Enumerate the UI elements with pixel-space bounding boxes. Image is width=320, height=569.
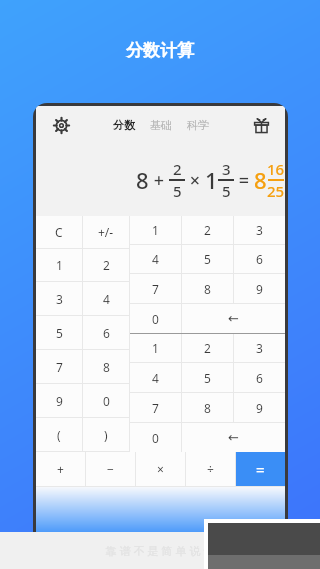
staticText: ) bbox=[104, 427, 108, 443]
button[interactable]: 3 bbox=[234, 334, 285, 362]
staticText: 基础 bbox=[150, 118, 172, 132]
staticText: 9 bbox=[256, 281, 263, 297]
staticText: 3 bbox=[56, 291, 63, 307]
button[interactable]: +/- bbox=[83, 216, 129, 248]
staticText: 2 bbox=[173, 159, 182, 179]
staticText: 7 bbox=[152, 281, 159, 297]
staticText: 2 bbox=[204, 222, 211, 238]
staticText: 分数 bbox=[113, 118, 135, 132]
button[interactable]: Backspace bbox=[182, 423, 285, 452]
button[interactable]: Settings bbox=[48, 112, 74, 138]
button[interactable]: Backspace bbox=[182, 304, 285, 333]
button[interactable]: 5 bbox=[182, 363, 233, 392]
staticText: 6 bbox=[103, 325, 110, 341]
button[interactable]: 1 bbox=[36, 249, 82, 281]
button[interactable]: × bbox=[136, 452, 185, 486]
staticText: +/- bbox=[98, 224, 114, 240]
staticText: 8 bbox=[136, 165, 149, 195]
button[interactable]: 4 bbox=[83, 282, 129, 315]
staticText: 7 bbox=[152, 400, 159, 416]
staticText: 分数计算 bbox=[126, 40, 194, 61]
button[interactable]: 科学 bbox=[185, 114, 211, 136]
button[interactable]: 6 bbox=[234, 245, 285, 273]
staticText: = bbox=[256, 459, 265, 479]
button[interactable]: 4 bbox=[130, 363, 181, 392]
staticText: 靠谱不是简单说说 bbox=[104, 544, 216, 558]
button[interactable]: + bbox=[36, 452, 85, 486]
staticText: ÷ bbox=[207, 461, 214, 477]
button[interactable]: Gift bbox=[248, 112, 274, 138]
button[interactable]: 0 bbox=[130, 304, 181, 333]
button[interactable]: 1 bbox=[130, 216, 181, 244]
button[interactable]: 4 bbox=[130, 245, 181, 273]
button[interactable]: 2 bbox=[83, 249, 129, 281]
button[interactable]: 9 bbox=[234, 274, 285, 303]
button[interactable]: 7 bbox=[130, 393, 181, 422]
button[interactable]: 5 bbox=[36, 316, 82, 349]
button[interactable]: ( bbox=[36, 418, 82, 451]
button[interactable]: 9 bbox=[234, 393, 285, 422]
button[interactable]: ÷ bbox=[186, 452, 235, 486]
staticText: 1 bbox=[152, 340, 159, 356]
staticText: 2 bbox=[103, 257, 110, 273]
staticText: 8 bbox=[103, 359, 110, 375]
staticText: 科学 bbox=[187, 118, 209, 132]
button[interactable]: 1 bbox=[130, 334, 181, 362]
staticText: − bbox=[107, 461, 114, 477]
staticText: 1 bbox=[56, 257, 63, 273]
button[interactable]: 7 bbox=[130, 274, 181, 303]
button[interactable]: 8 bbox=[182, 393, 233, 422]
button[interactable]: 5 bbox=[182, 245, 233, 273]
staticText: C bbox=[55, 224, 63, 240]
staticText: 9 bbox=[256, 400, 263, 416]
staticText: 7 bbox=[56, 359, 63, 375]
staticText: 5 bbox=[204, 251, 211, 267]
staticText: 9 bbox=[56, 393, 63, 409]
staticText: 16 bbox=[267, 159, 285, 179]
staticText: + bbox=[57, 461, 64, 477]
button[interactable]: ) bbox=[83, 418, 129, 451]
staticText: 6 bbox=[256, 370, 263, 386]
staticText: 4 bbox=[152, 370, 159, 386]
button[interactable]: 7 bbox=[36, 350, 82, 383]
staticText: 3 bbox=[256, 340, 263, 356]
staticText: 0 bbox=[103, 393, 110, 409]
staticText: 0 bbox=[152, 430, 159, 446]
staticText: ( bbox=[57, 427, 61, 443]
staticText: 3 bbox=[222, 159, 231, 179]
staticText: 3 bbox=[256, 222, 263, 238]
staticText: × bbox=[185, 168, 205, 193]
button[interactable]: 0 bbox=[130, 423, 181, 452]
staticText: + bbox=[149, 168, 169, 193]
button[interactable]: 9 bbox=[36, 384, 82, 417]
staticText: ← bbox=[228, 311, 239, 326]
staticText: 2 bbox=[204, 340, 211, 356]
button[interactable]: 分数 bbox=[111, 114, 137, 136]
staticText: 6 bbox=[256, 251, 263, 267]
staticText: 8 bbox=[204, 281, 211, 297]
staticText: = bbox=[234, 168, 254, 193]
button[interactable]: 2 bbox=[182, 334, 233, 362]
staticText: 1 bbox=[152, 222, 159, 238]
button[interactable]: 0 bbox=[83, 384, 129, 417]
staticText: 4 bbox=[103, 291, 110, 307]
button[interactable]: − bbox=[86, 452, 135, 486]
button[interactable]: 2 bbox=[182, 216, 233, 244]
button[interactable]: 6 bbox=[234, 363, 285, 392]
staticText: × bbox=[157, 461, 164, 477]
staticText: 0 bbox=[152, 311, 159, 327]
button[interactable]: 8 bbox=[83, 350, 129, 383]
staticText: 5 bbox=[173, 181, 182, 201]
button[interactable]: 6 bbox=[83, 316, 129, 349]
staticText: 5 bbox=[56, 325, 63, 341]
staticText: 1 bbox=[205, 165, 218, 195]
button[interactable]: C bbox=[36, 216, 82, 248]
button[interactable]: 3 bbox=[234, 216, 285, 244]
button[interactable]: = bbox=[236, 452, 285, 486]
button[interactable]: 基础 bbox=[148, 114, 174, 136]
button[interactable]: 3 bbox=[36, 282, 82, 315]
staticText: 25 bbox=[267, 181, 285, 201]
staticText: 5 bbox=[222, 181, 231, 201]
staticText: 4 bbox=[152, 251, 159, 267]
button[interactable]: 8 bbox=[182, 274, 233, 303]
